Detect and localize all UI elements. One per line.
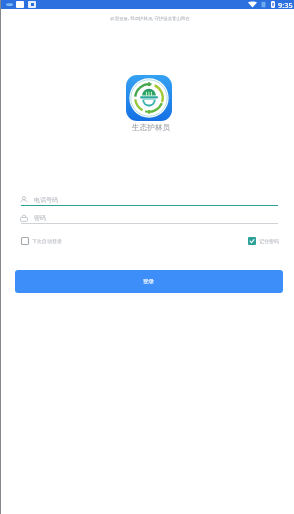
- staticText: 密码: [34, 214, 46, 222]
- staticText: 9:35: [278, 0, 293, 10]
- button[interactable]: 密码: [20, 212, 278, 223]
- button[interactable]: 下次自动登录: [21, 235, 62, 247]
- staticText: 欢迎登录, 我是护林员, 守护绿水青山我在: [110, 15, 190, 21]
- button[interactable]: 登录: [15, 270, 283, 293]
- staticText: 下次自动登录: [32, 238, 62, 244]
- staticText: 登录: [143, 278, 155, 285]
- staticText: 电话号码: [34, 196, 58, 204]
- button[interactable]: 生态护林员: [126, 75, 172, 121]
- staticText: 生态护林员: [132, 123, 170, 133]
- button[interactable]: 记住密码: [248, 235, 279, 247]
- staticText: 记住密码: [259, 238, 279, 244]
- button[interactable]: 电话号码: [20, 194, 278, 205]
